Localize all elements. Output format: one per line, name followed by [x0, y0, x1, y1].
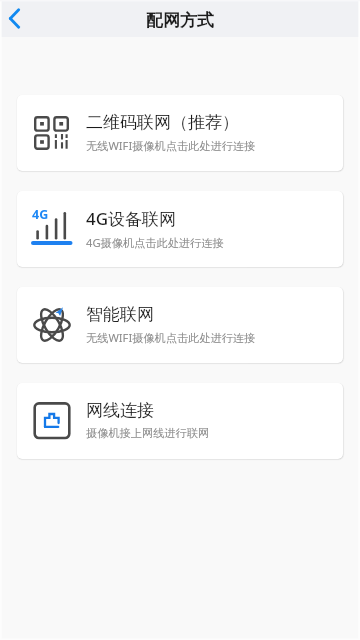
- button[interactable]: 智能联网: [17, 287, 343, 363]
- button[interactable]: Back: [0, 0, 29, 37]
- button[interactable]: 二维码联网（推荐）: [17, 95, 343, 171]
- staticText: 4G摄像机点击此处进行连接: [86, 235, 224, 250]
- staticText: 配网方式: [146, 10, 214, 31]
- button[interactable]: 4G: [17, 191, 343, 267]
- staticText: 4G设备联网: [86, 207, 177, 230]
- staticText: 摄像机接上网线进行联网: [86, 426, 210, 440]
- staticText: 网线连接: [86, 400, 154, 421]
- staticText: 无线WIFI摄像机点击此处进行连接: [86, 330, 256, 345]
- staticText: 4G: [32, 206, 49, 223]
- button[interactable]: 网线连接: [17, 383, 343, 459]
- staticText: 二维码联网（推荐）: [86, 112, 239, 133]
- staticText: 无线WIFI摄像机点击此处进行连接: [86, 138, 256, 153]
- staticText: 智能联网: [86, 304, 154, 325]
